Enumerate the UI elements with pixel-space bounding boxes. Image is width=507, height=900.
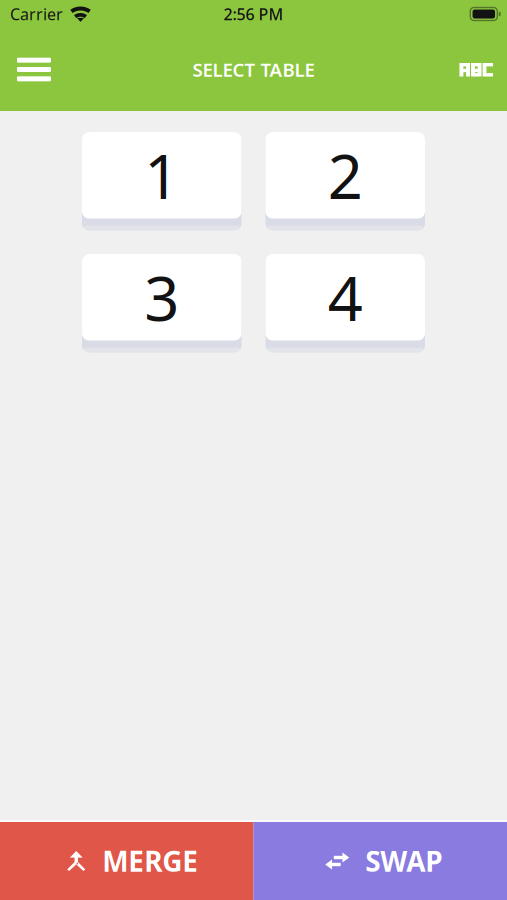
button[interactable]: Keyboard — [445, 39, 507, 99]
staticText: 1 — [144, 134, 179, 216]
staticText: SWAP — [365, 842, 442, 880]
button[interactable]: 1 — [82, 132, 241, 230]
button[interactable]: 3 — [82, 254, 241, 352]
button[interactable]: Menu — [0, 39, 68, 99]
staticText: Carrier — [10, 3, 63, 25]
button[interactable]: SWAP — [253, 822, 507, 900]
staticText: SELECT TABLE — [192, 57, 314, 82]
staticText: 4 — [328, 256, 363, 338]
button[interactable]: 2 — [265, 132, 425, 230]
staticText: 3 — [144, 256, 179, 338]
button[interactable]: MERGE — [0, 822, 253, 900]
staticText: 2 — [328, 134, 363, 216]
staticText: 2:56 PM — [223, 3, 283, 25]
button[interactable]: 4 — [265, 254, 425, 352]
staticText: MERGE — [102, 842, 198, 880]
